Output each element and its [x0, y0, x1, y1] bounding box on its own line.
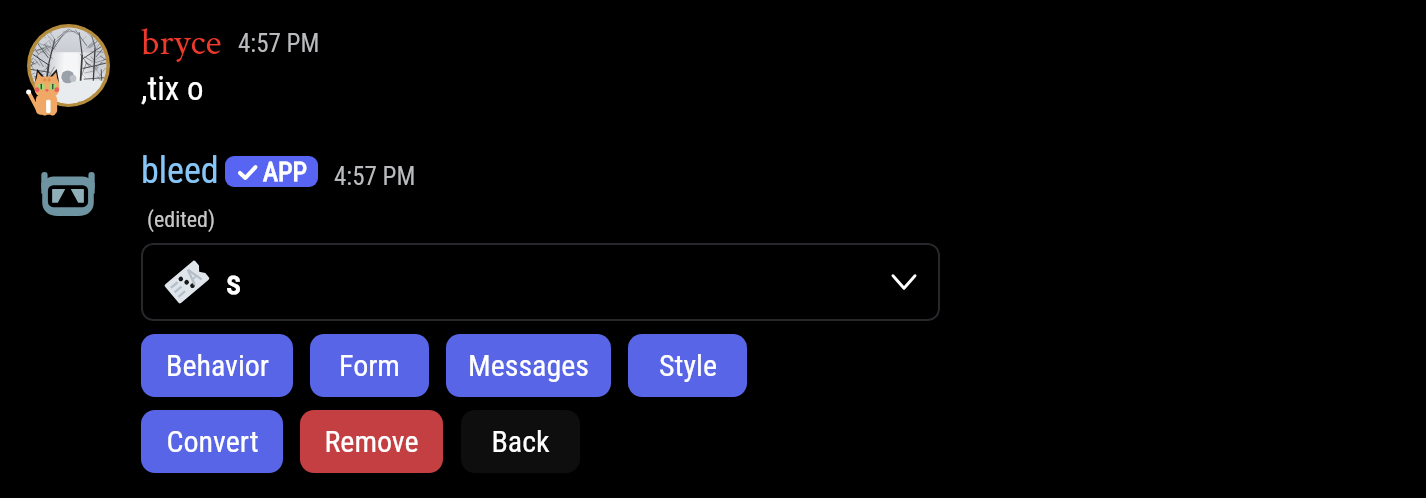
button[interactable]: Behavior: [141, 334, 293, 397]
staticText: bryce: [141, 18, 222, 67]
staticText: 4:57 PM: [334, 162, 416, 191]
staticText: Messages: [468, 348, 589, 383]
staticText: APP: [263, 157, 307, 187]
staticText: Remove: [324, 424, 419, 459]
button[interactable]: s: [141, 243, 940, 321]
other: Expand options: [887, 265, 921, 299]
other: bleed bot avatar: [38, 172, 98, 216]
staticText: (edited): [147, 207, 215, 233]
other: bryce avatar: [27, 24, 110, 107]
staticText: Back: [491, 424, 550, 459]
button[interactable]: Style: [628, 334, 747, 397]
staticText: Convert: [166, 424, 259, 459]
button[interactable]: Convert: [141, 410, 283, 473]
button[interactable]: APP: [225, 156, 318, 187]
button[interactable]: Back: [461, 410, 580, 473]
button[interactable]: Remove: [300, 410, 443, 473]
staticText: bleed: [141, 150, 219, 192]
staticText: Style: [659, 348, 717, 383]
button[interactable]: Messages: [446, 334, 611, 397]
staticText: 4:57 PM: [238, 29, 320, 58]
button[interactable]: Form: [310, 334, 429, 397]
staticText: Behavior: [166, 348, 269, 383]
staticText: s: [226, 263, 242, 302]
staticText: Form: [339, 348, 400, 383]
staticText: ,tix o: [141, 69, 204, 108]
